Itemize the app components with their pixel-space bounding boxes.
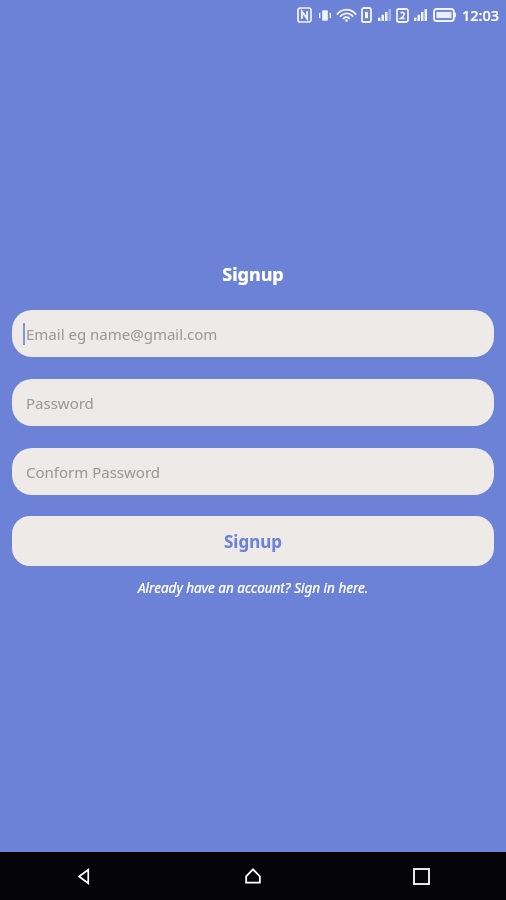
button[interactable]: Conform Password: [12, 448, 494, 495]
staticText: Password: [26, 393, 94, 413]
button[interactable]: Already have an account? Sign in here.: [0, 579, 506, 597]
staticText: Already have an account? Sign in here.: [138, 579, 369, 597]
staticText: Email eg name@gmail.com: [26, 324, 218, 344]
button[interactable]: Password: [12, 379, 494, 426]
button[interactable]: Back: [0, 852, 168, 900]
staticText: Signup: [0, 262, 506, 287]
staticText: 12:03: [462, 5, 500, 25]
button[interactable]: Email eg name@gmail.com: [12, 310, 494, 357]
button[interactable]: Home: [168, 852, 337, 900]
button[interactable]: Signup: [12, 516, 494, 566]
staticText: Conform Password: [26, 462, 161, 482]
button[interactable]: Recent apps: [337, 852, 506, 900]
staticText: Signup: [224, 530, 283, 553]
